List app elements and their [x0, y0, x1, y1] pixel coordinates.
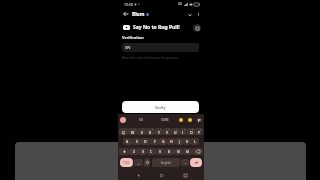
button[interactable]: 5	[155, 128, 163, 135]
staticText: 0	[200, 128, 202, 131]
button[interactable]: H	[167, 138, 175, 145]
button[interactable]: Back	[134, 171, 142, 179]
button[interactable]: M	[183, 148, 192, 155]
staticText: A	[126, 139, 129, 144]
staticText: ?123	[123, 161, 130, 165]
staticText: 9	[192, 128, 194, 131]
button[interactable]: X	[138, 148, 147, 155]
button[interactable]: Back	[121, 9, 131, 19]
staticText: 2	[134, 128, 136, 131]
staticText: D	[144, 139, 147, 144]
staticText: G	[162, 139, 165, 144]
button[interactable]: SN	[122, 43, 199, 52]
staticText: 6	[168, 128, 170, 131]
button[interactable]: B	[165, 148, 174, 155]
button[interactable]: SURE	[161, 118, 169, 122]
button[interactable]: A	[123, 138, 132, 145]
button[interactable]: G	[159, 138, 167, 145]
button[interactable]: 3	[137, 128, 146, 135]
staticText: R	[149, 130, 152, 135]
staticText: SN	[125, 45, 131, 51]
staticText: O	[190, 130, 193, 135]
staticText: 4	[152, 128, 154, 131]
button[interactable]: Emoji	[188, 118, 192, 122]
button[interactable]: 4	[146, 128, 155, 135]
button[interactable]: Recents	[181, 171, 189, 179]
button[interactable]: S	[132, 138, 141, 145]
button[interactable]: Shift	[119, 148, 129, 155]
staticText: 3	[143, 128, 145, 131]
staticText: 1	[125, 128, 127, 131]
button[interactable]: Payments	[196, 117, 202, 123]
staticText: 8	[184, 128, 186, 131]
staticText: V	[159, 149, 162, 154]
staticText: Verification	[122, 35, 144, 40]
button[interactable]: 0	[195, 128, 203, 135]
button[interactable]: Verify	[122, 101, 199, 113]
button[interactable]: V	[156, 148, 165, 155]
button[interactable]: C	[147, 148, 156, 155]
staticText: Verify	[155, 105, 166, 110]
button[interactable]: Enter	[190, 158, 202, 167]
staticText: J	[179, 139, 180, 144]
staticText: E	[141, 130, 143, 135]
button[interactable]: ?123	[120, 158, 133, 167]
staticText: Z	[133, 149, 135, 154]
staticText: English	[161, 161, 171, 165]
button[interactable]: ,	[134, 159, 143, 166]
button[interactable]: Z	[129, 148, 138, 155]
staticText: 7	[176, 128, 178, 131]
button[interactable]: Video options	[193, 24, 201, 32]
staticText: Y	[166, 130, 168, 135]
staticText: Say No to Rug Pull!	[133, 24, 180, 31]
staticText: I	[182, 130, 184, 135]
staticText: P	[198, 130, 201, 135]
staticText: .	[185, 160, 186, 165]
staticText: Q	[122, 130, 125, 135]
button[interactable]: SU	[139, 118, 144, 122]
staticText: 10:58	[124, 2, 133, 7]
staticText: U	[174, 130, 177, 135]
button[interactable]: D	[141, 138, 150, 145]
button[interactable]: F	[150, 138, 159, 145]
staticText: H	[170, 139, 173, 144]
button[interactable]: 1	[119, 128, 128, 135]
staticText: Blum	[132, 11, 145, 18]
button[interactable]: Language	[144, 158, 150, 167]
button[interactable]: English	[152, 158, 180, 167]
button[interactable]: 2	[128, 128, 137, 135]
button[interactable]: Say No to Rug Pull!	[123, 22, 201, 33]
staticText: X	[142, 149, 144, 154]
button[interactable]: 8	[179, 128, 187, 135]
staticText: K	[186, 139, 189, 144]
button[interactable]: Expand	[185, 10, 194, 19]
button[interactable]: 6	[163, 128, 171, 135]
button[interactable]: Home	[157, 171, 165, 179]
staticText: Watch the video and answer the question	[122, 56, 179, 60]
staticText: N	[177, 149, 180, 154]
button[interactable]: K	[183, 138, 191, 145]
button[interactable]: Keyboard menu	[120, 117, 126, 123]
staticText: S	[136, 139, 138, 144]
staticText: L	[194, 139, 196, 144]
staticText: 4G	[178, 2, 183, 6]
button[interactable]: 9	[187, 128, 195, 135]
button[interactable]: N	[174, 148, 183, 155]
staticText: W	[131, 130, 135, 135]
button[interactable]: L	[191, 138, 199, 145]
staticText: C	[150, 149, 153, 154]
staticText: T	[158, 130, 160, 135]
button[interactable]: .	[181, 159, 189, 166]
staticText: B	[168, 149, 171, 154]
button[interactable]: J	[175, 138, 183, 145]
staticText: P	[198, 118, 201, 123]
button[interactable]: Emoji	[179, 118, 183, 122]
staticText: ,	[138, 160, 139, 165]
staticText: 5	[160, 128, 162, 131]
staticText: M	[186, 149, 190, 154]
button[interactable]: Backspace	[192, 148, 203, 155]
button[interactable]: 7	[171, 128, 179, 135]
button[interactable]: More options	[194, 10, 203, 19]
staticText: F	[154, 139, 156, 144]
